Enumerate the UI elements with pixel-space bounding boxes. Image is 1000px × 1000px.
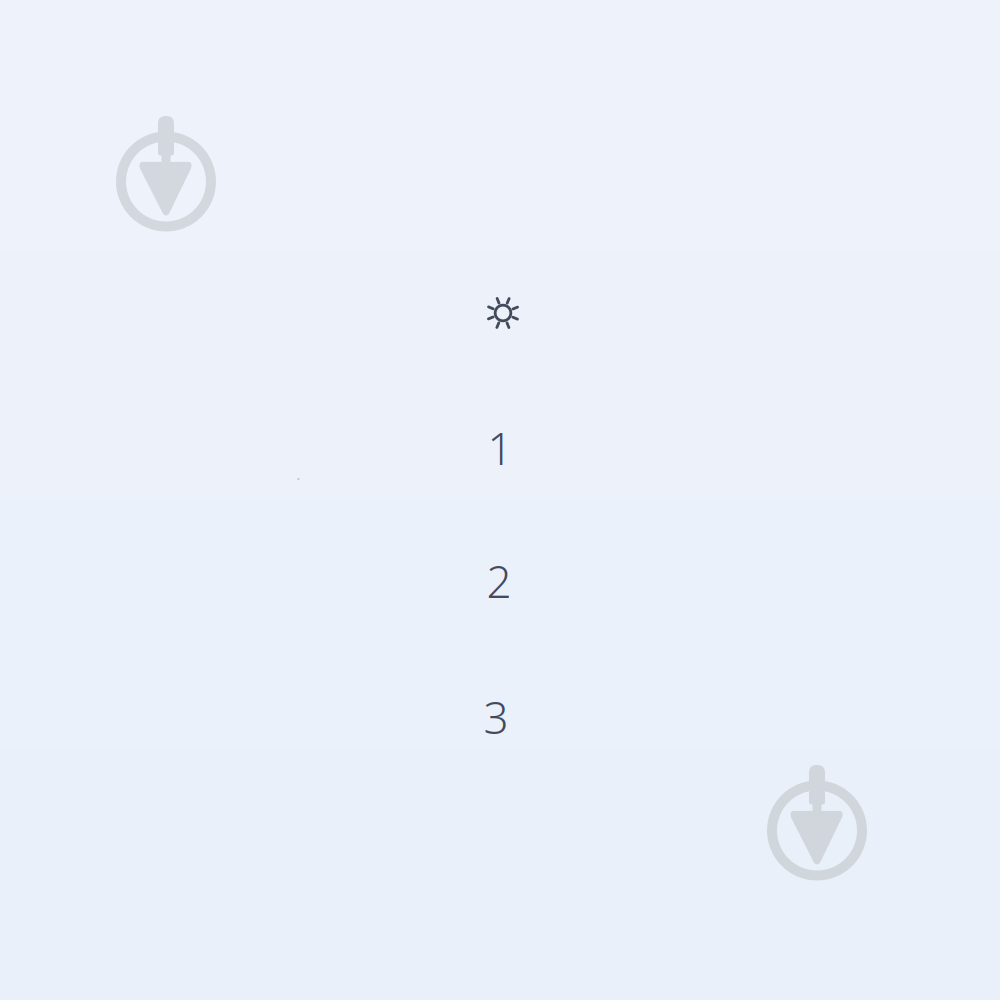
button[interactable]: 2 <box>477 559 521 603</box>
button[interactable]: 3 <box>474 695 518 739</box>
staticText: 2 <box>486 552 511 610</box>
staticText: 3 <box>483 688 508 746</box>
button[interactable]: 1 <box>478 426 522 470</box>
button[interactable]: Brightness <box>481 291 525 335</box>
staticText: 1 <box>487 419 512 477</box>
